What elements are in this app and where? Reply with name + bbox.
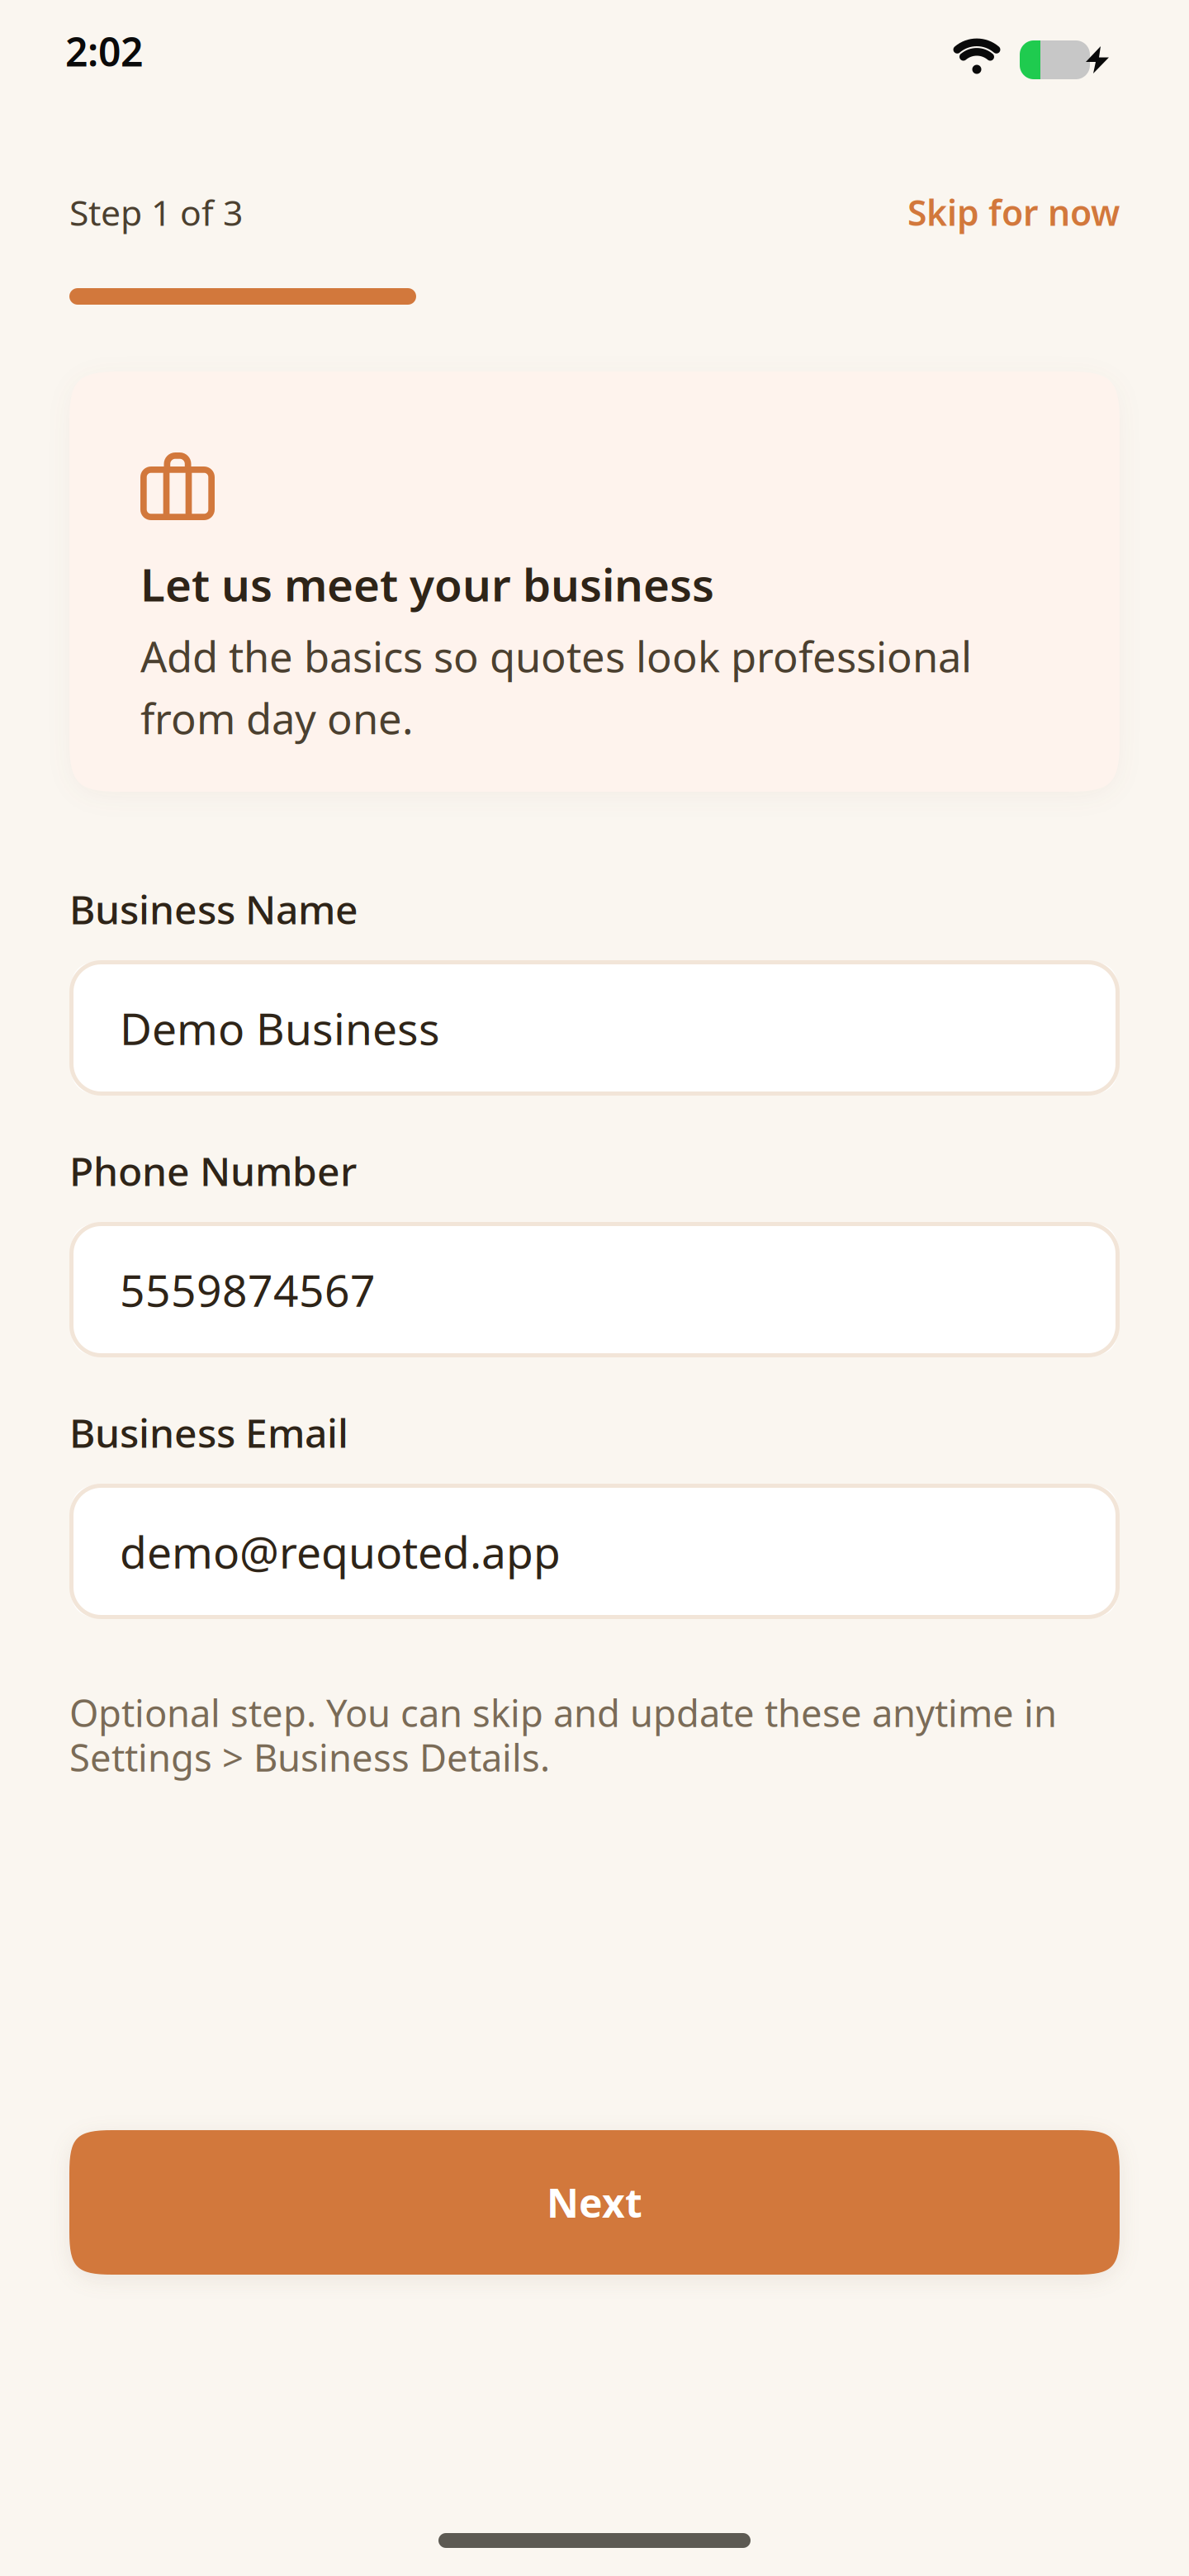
staticText: from day one.: [140, 690, 414, 746]
button[interactable]: demo@requoted.app: [69, 1484, 1120, 1619]
staticText: demo@requoted.app: [120, 1522, 561, 1581]
button[interactable]: Next: [69, 2130, 1120, 2275]
staticText: Settings > Business Details.: [69, 1732, 550, 1782]
staticText: 5559874567: [120, 1260, 376, 1319]
staticText: Next: [547, 2176, 642, 2229]
button[interactable]: Demo Business: [69, 960, 1120, 1096]
staticText: Add the basics so quotes look profession…: [140, 628, 972, 684]
staticText: Step 1 of 3: [69, 189, 243, 236]
staticText: Let us meet your business: [140, 554, 714, 614]
button[interactable]: Skip for now: [907, 189, 1120, 236]
staticText: 2:02: [65, 25, 143, 77]
staticText: Optional step. You can skip and update t…: [69, 1688, 1057, 1737]
staticText: Phone Number: [69, 1144, 357, 1197]
button[interactable]: 5559874567: [69, 1222, 1120, 1357]
staticText: Business Name: [69, 883, 358, 935]
staticText: Demo Business: [120, 999, 440, 1057]
staticText: Business Email: [69, 1406, 348, 1459]
staticText: Skip for now: [907, 189, 1120, 236]
